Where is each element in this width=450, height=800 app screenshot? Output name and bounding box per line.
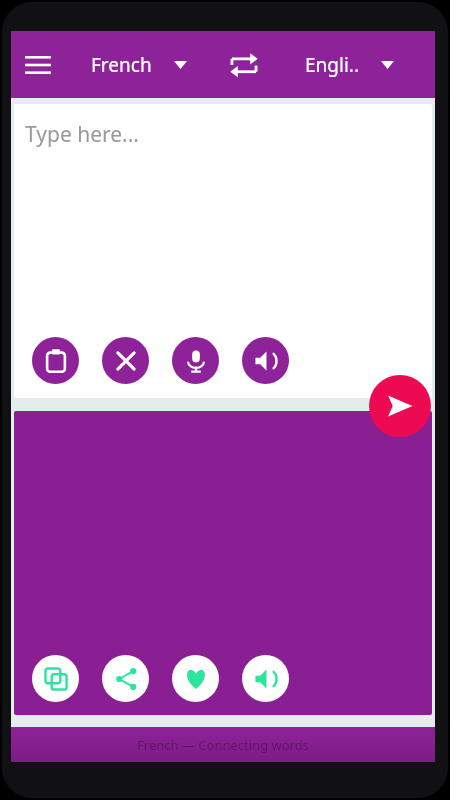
- button[interactable]: Listen: [242, 337, 289, 384]
- button[interactable]: Share: [102, 655, 149, 702]
- button[interactable]: Paste: [32, 337, 79, 384]
- button[interactable]: Translate: [369, 375, 431, 437]
- button[interactable]: Copy: [32, 655, 79, 702]
- button[interactable]: Favourite: [172, 655, 219, 702]
- staticText: French — Connecting words: [137, 736, 309, 754]
- staticText: Engli..: [305, 52, 359, 78]
- button[interactable]: Speak: [172, 337, 219, 384]
- staticText: French: [91, 52, 152, 78]
- button[interactable]: Menu: [18, 45, 58, 85]
- staticText: Type here...: [25, 120, 139, 149]
- button[interactable]: Listen translation: [242, 655, 289, 702]
- button[interactable]: French: [58, 31, 220, 98]
- button[interactable]: Clear: [102, 337, 149, 384]
- button[interactable]: Swap languages: [220, 41, 268, 89]
- button[interactable]: Engli..: [268, 31, 431, 98]
